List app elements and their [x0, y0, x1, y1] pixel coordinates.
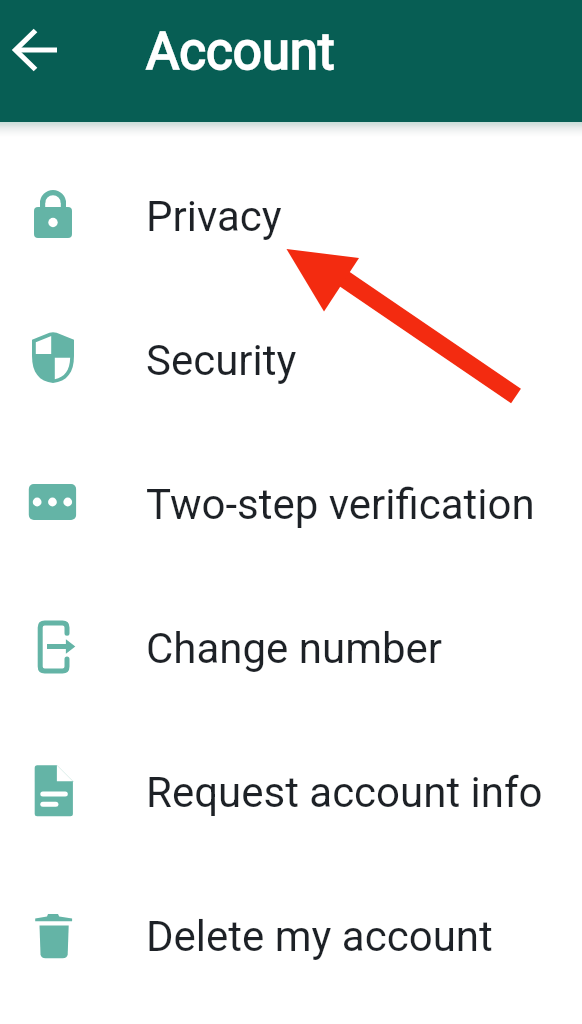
staticText: Account [146, 22, 335, 82]
staticText: Change number [146, 624, 443, 673]
staticText: Privacy [146, 192, 282, 241]
button[interactable]: Navigate back [0, 0, 86, 100]
button[interactable]: Two-step verification [0, 429, 582, 573]
staticText: Security [146, 336, 297, 385]
button[interactable]: Security [0, 285, 582, 429]
staticText: Two-step verification [146, 480, 535, 529]
staticText: Request account info [146, 768, 543, 817]
button[interactable]: Change number [0, 573, 582, 717]
button[interactable]: Delete my account [0, 861, 582, 1005]
staticText: Delete my account [146, 912, 493, 961]
button[interactable]: Request account info [0, 717, 582, 861]
button[interactable]: Privacy [0, 141, 582, 285]
